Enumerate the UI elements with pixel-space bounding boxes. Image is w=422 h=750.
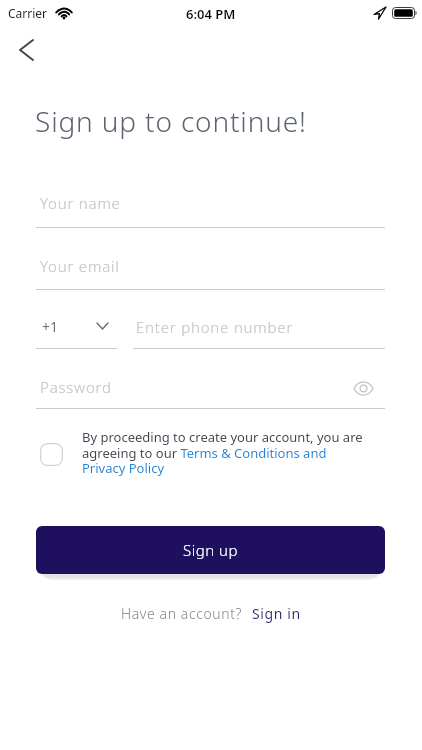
button[interactable]: +1: [36, 310, 117, 348]
button[interactable]: [10, 34, 42, 66]
staticText: Have an account?: [121, 604, 243, 623]
staticText: By proceeding to create your account, yo…: [82, 428, 363, 446]
button[interactable]: Sign up: [36, 526, 385, 574]
staticText: Enter phone number: [136, 317, 294, 337]
button[interactable]: Privacy Policy: [82, 459, 165, 477]
staticText: Sign up: [183, 540, 238, 560]
button[interactable]: [36, 252, 385, 290]
button[interactable]: [36, 372, 336, 409]
staticText: Your name: [40, 193, 121, 213]
button[interactable]: [133, 310, 385, 348]
button[interactable]: agreeing to our Terms & Conditions and: [82, 444, 327, 462]
button[interactable]: Sign in: [252, 604, 301, 623]
staticText: 6:04 PM: [186, 5, 236, 23]
staticText: +1: [42, 317, 59, 336]
button[interactable]: [348, 374, 378, 402]
staticText: Sign up to continue!: [35, 102, 307, 140]
button[interactable]: [40, 443, 63, 466]
staticText: Your email: [40, 256, 120, 276]
staticText: Carrier: [8, 5, 48, 21]
button[interactable]: [36, 190, 385, 228]
staticText: Password: [40, 377, 112, 397]
